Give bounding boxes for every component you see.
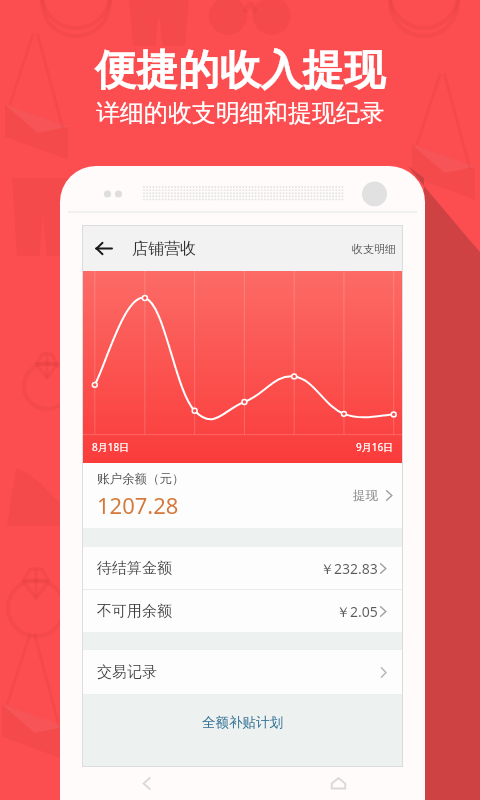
staticText: ￥2.05 — [336, 602, 378, 621]
button[interactable]: 收支明细 — [342, 226, 402, 271]
staticText: 店铺营收 — [132, 239, 196, 259]
staticText: 账户余额（元） — [97, 471, 185, 487]
staticText: 9月16日 — [356, 440, 394, 454]
staticText: 不可用余额 — [97, 602, 172, 621]
button[interactable]: Back — [83, 226, 125, 271]
staticText: 详细的收支明细和提现纪录 — [96, 98, 384, 128]
staticText: 提现 — [353, 488, 378, 504]
staticText: 收支明细 — [352, 242, 396, 256]
button[interactable]: 全额补贴计划 — [192, 704, 293, 741]
button[interactable]: Back — [124, 766, 168, 800]
button[interactable]: Home — [316, 766, 360, 800]
button[interactable]: 待结算金额 — [83, 547, 402, 589]
staticText: 便捷的收入提现 — [95, 45, 386, 97]
button[interactable]: 交易记录 — [83, 650, 402, 694]
button[interactable]: 不可用余额 — [83, 590, 402, 632]
staticText: 全额补贴计划 — [202, 714, 283, 731]
staticText: 待结算金额 — [97, 559, 172, 578]
staticText: 1207.28 — [97, 490, 179, 520]
button[interactable]: 提现 — [343, 463, 402, 528]
staticText: ￥232.83 — [320, 559, 378, 578]
staticText: 交易记录 — [97, 663, 157, 682]
staticText: 8月18日 — [92, 440, 130, 454]
